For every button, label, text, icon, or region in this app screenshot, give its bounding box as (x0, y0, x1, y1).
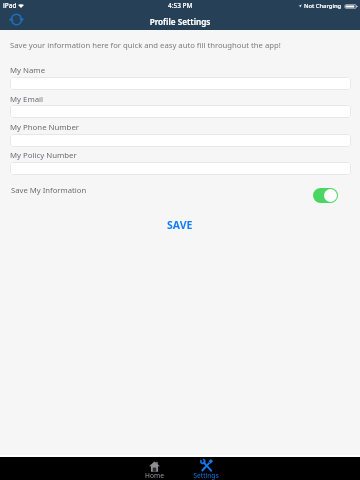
staticText: My Email (10, 94, 44, 105)
button[interactable]: Home (128, 457, 180, 480)
button[interactable]: Refresh (10, 13, 23, 26)
button[interactable]: Save My Information toggle (313, 188, 338, 203)
button[interactable]: SAVE (0, 218, 360, 232)
staticText: iPad (3, 1, 17, 10)
staticText: Save My Information (11, 185, 87, 195)
staticText: Home (145, 471, 164, 480)
staticText: Settings (193, 471, 219, 480)
staticText: 4:53 PM (168, 1, 193, 10)
staticText: Not Charging (304, 2, 342, 10)
button[interactable]: My Name (10, 77, 351, 90)
staticText: Save your information here for quick and… (10, 40, 281, 50)
staticText: My Phone Number (10, 122, 80, 133)
staticText: SAVE (167, 218, 193, 232)
staticText: My Name (10, 65, 46, 76)
button[interactable]: My Policy Number (10, 162, 351, 175)
button[interactable]: My Phone Number (10, 134, 351, 147)
staticText: Profile Settings (0, 16, 360, 27)
staticText: My Policy Number (10, 150, 77, 161)
button[interactable]: My Email (10, 105, 351, 118)
button[interactable]: Settings (180, 457, 232, 480)
